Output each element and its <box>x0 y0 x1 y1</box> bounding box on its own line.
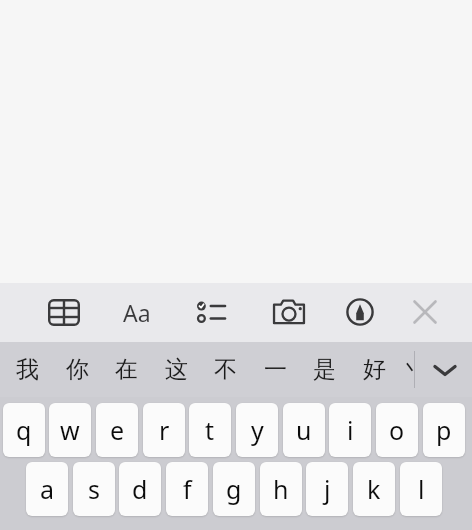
staticText: q <box>16 413 32 447</box>
staticText: p <box>436 413 452 447</box>
button[interactable]: 这 <box>153 342 199 397</box>
button[interactable]: l <box>400 462 442 516</box>
button[interactable]: h <box>260 462 302 516</box>
button[interactable]: Collapse suggestions <box>418 342 472 397</box>
staticText: k <box>367 472 381 506</box>
staticText: 好 <box>363 355 386 384</box>
button[interactable]: j <box>306 462 348 516</box>
staticText: t <box>205 413 215 447</box>
staticText: 我 <box>16 355 39 384</box>
staticText: y <box>251 413 264 447</box>
staticText: j <box>324 472 331 506</box>
button[interactable]: 我 <box>4 342 50 397</box>
button[interactable]: p <box>423 403 465 457</box>
button[interactable]: u <box>283 403 325 457</box>
button[interactable]: 一 <box>252 342 298 397</box>
button[interactable]: Close <box>402 293 448 331</box>
staticText: 一 <box>264 355 287 384</box>
staticText: l <box>418 472 425 506</box>
button[interactable]: r <box>143 403 185 457</box>
button[interactable]: f <box>166 462 208 516</box>
button[interactable]: i <box>329 403 371 457</box>
button[interactable]: s <box>73 462 115 516</box>
button[interactable]: Aa <box>111 294 163 330</box>
button[interactable]: a <box>26 462 68 516</box>
staticText: i <box>347 413 354 447</box>
staticText: 丶 <box>400 356 416 384</box>
button[interactable]: g <box>213 462 255 516</box>
staticText: e <box>110 413 125 447</box>
button[interactable]: q <box>3 403 45 457</box>
button[interactable]: Checklist <box>188 293 234 331</box>
staticText: h <box>273 472 289 506</box>
button[interactable]: d <box>119 462 161 516</box>
button[interactable]: 不 <box>202 342 248 397</box>
button[interactable]: 是 <box>301 342 347 397</box>
staticText: r <box>159 413 170 447</box>
staticText: 你 <box>66 355 89 384</box>
button[interactable]: 好 <box>351 342 397 397</box>
staticText: o <box>389 413 405 447</box>
button[interactable]: t <box>189 403 231 457</box>
staticText: a <box>40 472 55 506</box>
staticText: u <box>296 413 312 447</box>
staticText: 不 <box>214 355 237 384</box>
staticText: w <box>60 413 80 447</box>
button[interactable]: Camera <box>266 293 312 331</box>
button[interactable]: Table <box>41 293 87 331</box>
button[interactable]: Markup <box>337 293 383 331</box>
button[interactable]: k <box>353 462 395 516</box>
button[interactable]: 你 <box>54 342 100 397</box>
staticText: 是 <box>313 355 336 384</box>
staticText: 在 <box>115 355 138 384</box>
button[interactable]: w <box>49 403 91 457</box>
button[interactable]: e <box>96 403 138 457</box>
button[interactable]: y <box>236 403 278 457</box>
button[interactable]: o <box>376 403 418 457</box>
staticText: g <box>226 472 242 506</box>
staticText: f <box>183 472 192 506</box>
staticText: 这 <box>165 355 188 384</box>
staticText: Aa <box>123 297 151 328</box>
staticText: s <box>88 472 100 506</box>
button[interactable]: 在 <box>103 342 149 397</box>
staticText: d <box>132 472 148 506</box>
